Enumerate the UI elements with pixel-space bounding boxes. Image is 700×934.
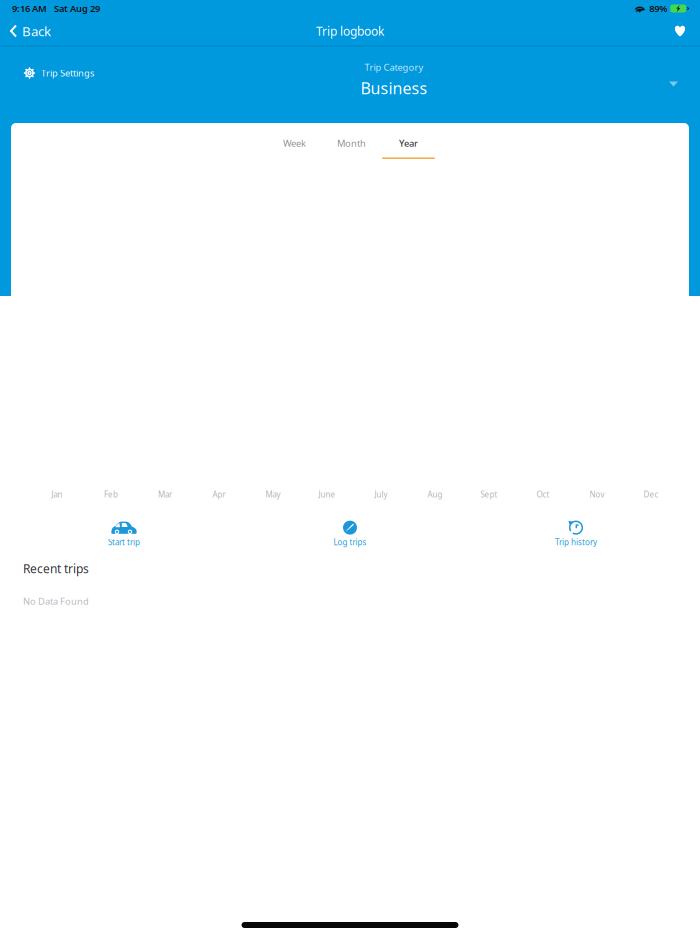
staticText: Sat Aug 29 [54, 2, 100, 15]
staticText: Apr [212, 489, 225, 500]
staticText: Log trips [333, 537, 366, 547]
staticText: Start trip [108, 537, 140, 547]
staticText: Year [399, 137, 418, 149]
staticText: Mar [158, 489, 172, 500]
staticText: Back [22, 22, 51, 40]
button[interactable]: Start trip [11, 521, 237, 547]
staticText: 89% [649, 2, 667, 15]
staticText: Trip history [555, 537, 597, 547]
staticText: Recent trips [23, 561, 89, 577]
staticText: July [374, 489, 387, 500]
staticText: Trip Category [364, 61, 423, 73]
staticText: Jan [51, 489, 62, 500]
staticText: Month [337, 137, 366, 149]
staticText: 9:16 AM [12, 2, 47, 15]
button[interactable]: Back [3, 17, 58, 45]
staticText: Trip Settings [41, 67, 94, 79]
staticText: No Data Found [23, 595, 89, 607]
button[interactable]: Trip history [463, 521, 689, 547]
button[interactable]: Change trip category [658, 73, 689, 95]
staticText: Trip logbook [316, 23, 384, 39]
button[interactable]: Year [380, 135, 437, 161]
staticText: Nov [589, 489, 604, 500]
staticText: Feb [104, 489, 118, 500]
button[interactable]: Month [323, 135, 380, 161]
button[interactable]: Week [266, 135, 323, 161]
staticText: Sept [480, 489, 497, 500]
staticText: June [318, 489, 335, 500]
button[interactable]: Favourite [666, 17, 694, 45]
staticText: May [265, 489, 280, 500]
staticText: Oct [536, 489, 549, 500]
button[interactable]: Log trips [237, 521, 463, 547]
staticText: Business [360, 77, 427, 99]
staticText: Dec [643, 489, 658, 500]
button[interactable]: Trip Settings [19, 60, 99, 86]
staticText: Aug [427, 489, 442, 500]
staticText: Week [283, 137, 306, 149]
